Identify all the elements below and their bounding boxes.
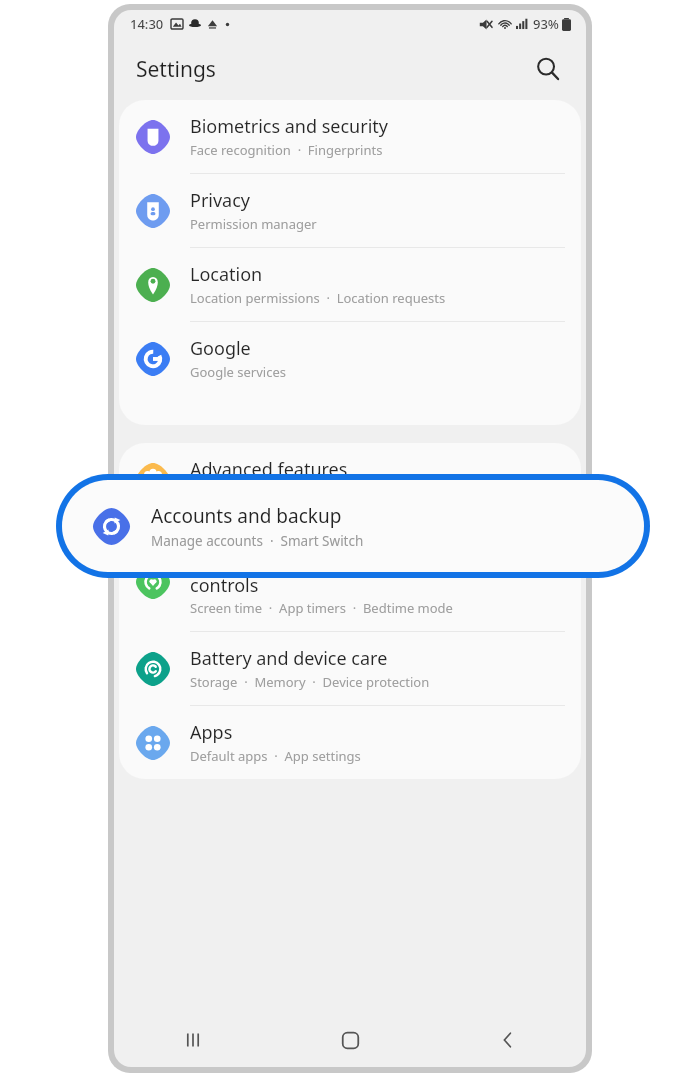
button[interactable]: Biometrics and security xyxy=(119,100,581,173)
button[interactable]: Recent apps xyxy=(114,1013,272,1067)
staticText: Privacy xyxy=(190,188,251,213)
staticText: Accounts and backup xyxy=(151,503,342,529)
staticText: Face recognition · Fingerprints xyxy=(190,141,383,159)
staticText: Apps xyxy=(190,720,233,745)
button[interactable]: Google xyxy=(119,322,581,395)
button[interactable]: Location xyxy=(119,248,581,321)
staticText: 93% xyxy=(533,15,559,33)
staticText: Battery and device care xyxy=(190,646,388,671)
button[interactable]: Apps xyxy=(119,706,581,779)
button[interactable]: Search xyxy=(528,49,568,89)
button[interactable]: Accounts and backup xyxy=(62,480,644,572)
button[interactable]: Battery and device care xyxy=(119,632,581,705)
button[interactable]: Back xyxy=(429,1013,586,1067)
staticText: Location permissions · Location requests xyxy=(190,289,446,307)
staticText: Biometrics and security xyxy=(190,114,388,139)
staticText: Google services xyxy=(190,363,286,381)
staticText: Location xyxy=(190,262,263,287)
button[interactable]: Digital Wellbeing and parental controls xyxy=(119,533,581,631)
button[interactable]: Home xyxy=(272,1013,429,1067)
staticText: Advanced features xyxy=(190,457,348,482)
staticText: 14:30 xyxy=(130,15,164,33)
staticText: Digital Wellbeing and parental controls xyxy=(190,547,446,597)
staticText: Default apps · App settings xyxy=(190,747,361,765)
staticText: Manage accounts · Smart Switch xyxy=(151,532,364,550)
button[interactable]: Privacy xyxy=(119,174,581,247)
staticText: Screen time · App timers · Bedtime mode xyxy=(190,599,453,617)
staticText: Storage · Memory · Device protection xyxy=(190,673,430,691)
button[interactable]: Advanced features xyxy=(119,443,581,516)
staticText: Settings xyxy=(136,55,216,84)
staticText: Permission manager xyxy=(190,215,317,233)
staticText: Google xyxy=(190,336,251,361)
